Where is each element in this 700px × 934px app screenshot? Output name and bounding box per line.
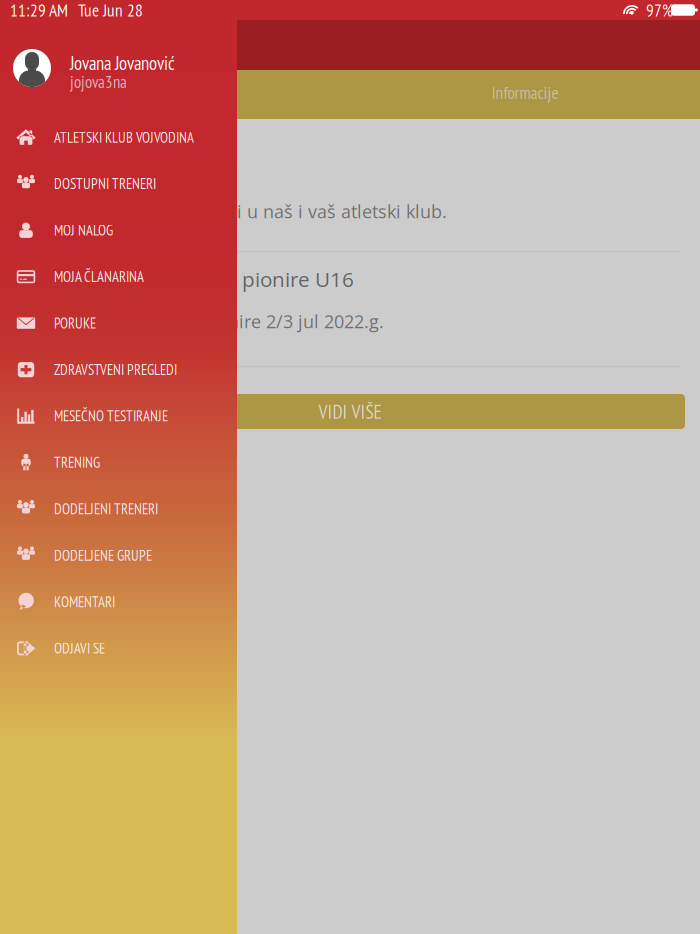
button[interactable]: ZDRAVSTVENI PREGLEDI [0, 346, 237, 393]
button[interactable]: MESEČNO TESTIRANJE [0, 393, 237, 439]
button[interactable]: DOSTUPNI TRENERI [0, 160, 237, 207]
button[interactable]: ATLETSKI KLUB VOJVODINA [0, 114, 237, 160]
button[interactable]: PORUKE [0, 300, 237, 346]
button[interactable]: DODELJENI TRENERI [0, 486, 237, 532]
staticText: KOMENTARI [54, 592, 115, 611]
staticText: ZDRAVSTVENI PREGLEDI [54, 360, 177, 379]
staticText: Jovana Jovanović [70, 51, 175, 75]
staticText: Prvenstvo Srbije za starije pionire 2/3 … [0, 309, 384, 333]
staticText: DODELJENI TRENERI [54, 499, 158, 518]
staticText: VIDI VIŠE [318, 399, 381, 424]
staticText: ATLETSKI KLUB VOJVODINA [54, 128, 194, 147]
button[interactable]: ODJAVI SE [0, 625, 237, 671]
button[interactable]: MOJA ČLANARINA [0, 253, 237, 300]
staticText: PORUKE [54, 313, 96, 332]
staticText: Dragi prijatelji, dobrodošli u naš i vaš… [21, 199, 447, 223]
staticText: Prvenstvo Srbije za starije pionire U16 [0, 265, 354, 293]
staticText: 97% [646, 0, 673, 21]
button[interactable]: DODELJENE GRUPE [0, 532, 237, 578]
button[interactable]: TRENING [0, 439, 237, 486]
staticText: jojova3na [70, 71, 127, 93]
button[interactable]: KOMENTARI [0, 578, 237, 625]
staticText: MOJA ČLANARINA [54, 267, 144, 286]
staticText: MOJ NALOG [54, 221, 113, 240]
staticText: DOSTUPNI TRENERI [54, 174, 156, 193]
staticText: MESEČNO TESTIRANJE [54, 406, 168, 425]
staticText: TRENING [54, 453, 100, 472]
staticText: ODJAVI SE [54, 639, 105, 658]
staticText: Informacije [491, 81, 558, 104]
staticText: Tue Jun 28 [78, 0, 143, 21]
button[interactable]: VIDI VIŠE [15, 394, 685, 429]
staticText: 11:29 AM [10, 0, 68, 21]
staticText: DODELJENE GRUPE [54, 546, 152, 565]
button[interactable]: MOJ NALOG [0, 207, 237, 253]
